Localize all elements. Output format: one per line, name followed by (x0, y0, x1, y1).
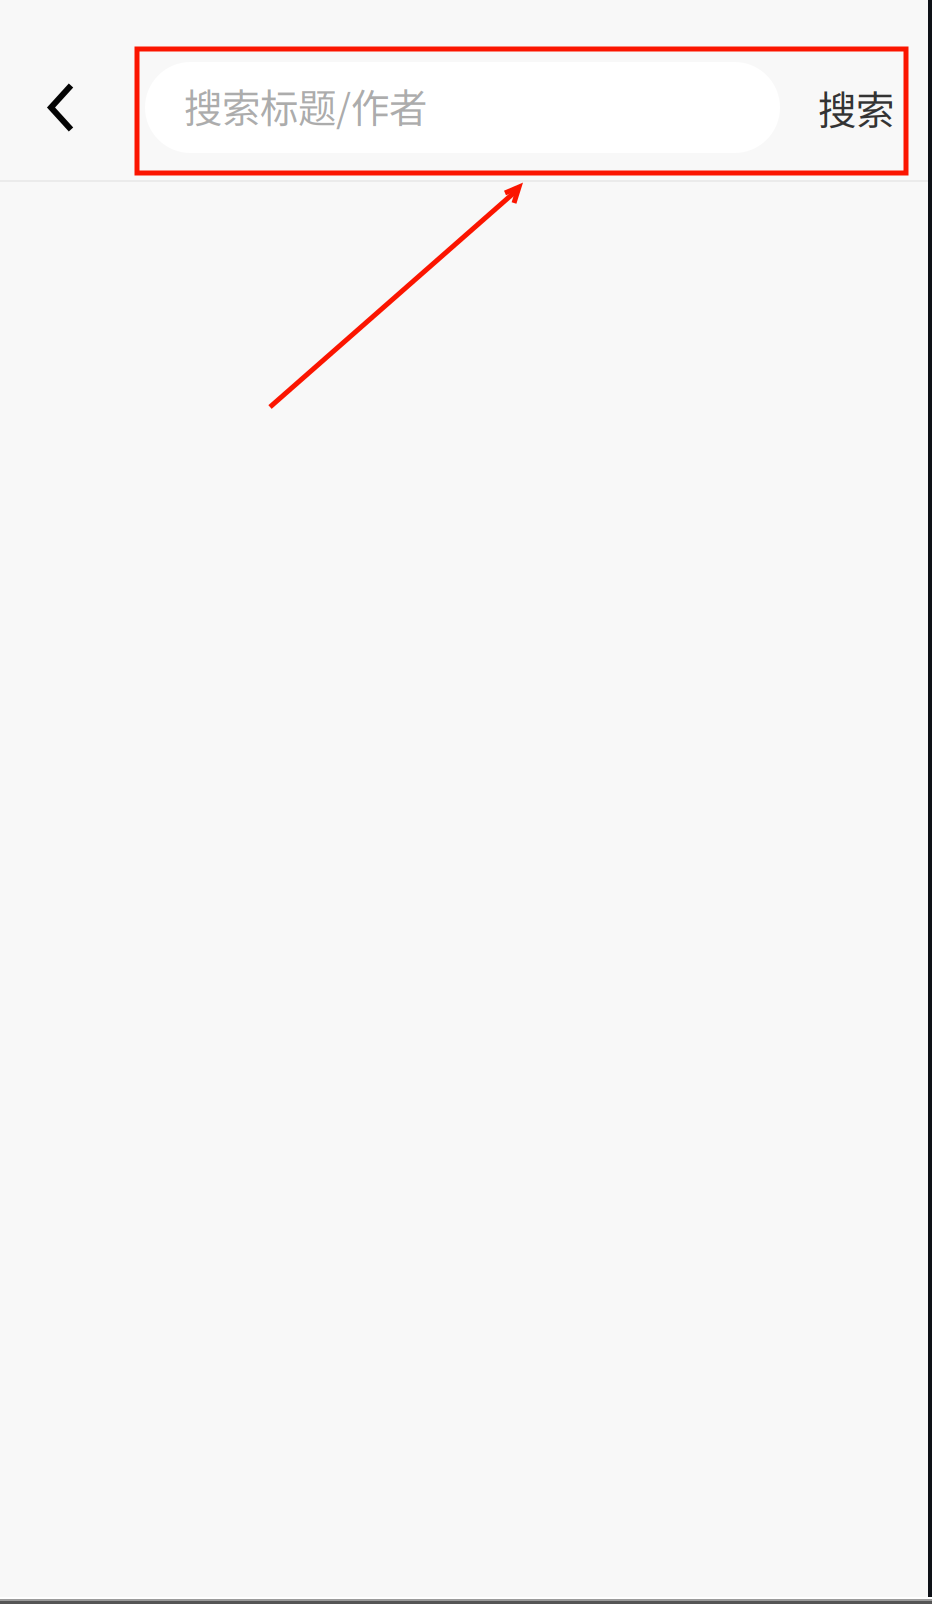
staticText: 搜索标题/作者 (184, 78, 427, 133)
button[interactable]: 搜索 (780, 62, 932, 153)
button[interactable]: 搜索标题/作者 (145, 62, 780, 153)
button[interactable]: Back (0, 62, 145, 153)
staticText: 搜索 (818, 80, 894, 135)
